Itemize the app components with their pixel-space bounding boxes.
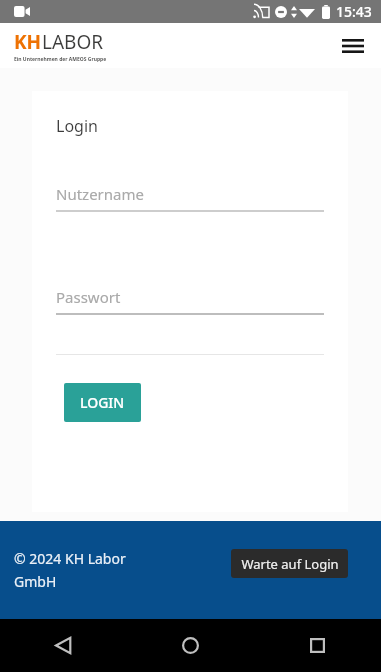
staticText: Warte auf Login bbox=[241, 555, 339, 573]
staticText: © 2024 KH Labor bbox=[14, 549, 126, 568]
staticText: Passwort bbox=[56, 287, 121, 307]
staticText: Nutzername bbox=[56, 184, 144, 204]
button[interactable]: Warte auf Login bbox=[231, 549, 348, 578]
button[interactable]: LOGIN bbox=[64, 383, 141, 422]
staticText: LABOR bbox=[42, 29, 104, 55]
button[interactable]: Übersicht bbox=[254, 619, 381, 672]
staticText: 15:43 bbox=[336, 2, 372, 21]
button[interactable]: Zurück bbox=[0, 619, 127, 672]
button[interactable]: Menü öffnen bbox=[334, 27, 372, 65]
staticText: KH bbox=[14, 29, 42, 55]
button[interactable]: KH bbox=[14, 29, 107, 63]
button[interactable]: Startseite bbox=[127, 619, 254, 672]
button[interactable]: Nutzername bbox=[56, 184, 324, 214]
staticText: GmbH bbox=[14, 572, 57, 591]
button[interactable]: Login bbox=[56, 115, 98, 137]
staticText: LOGIN bbox=[80, 393, 125, 412]
staticText: Ein Unternehmen der AMEOS Gruppe bbox=[14, 56, 107, 63]
button[interactable]: Passwort bbox=[56, 287, 324, 317]
